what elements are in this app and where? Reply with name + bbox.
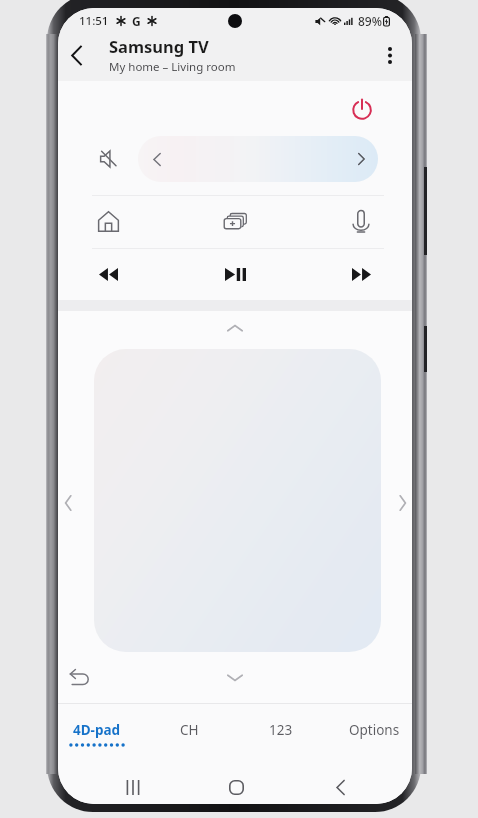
- staticText: G: [132, 13, 141, 29]
- button[interactable]: Back: [59, 37, 95, 73]
- button[interactable]: Touch pad: [94, 349, 381, 652]
- button[interactable]: Home: [90, 203, 126, 239]
- button[interactable]: Voice: [343, 203, 379, 239]
- staticText: CH: [180, 721, 199, 739]
- button[interactable]: Options: [328, 704, 412, 760]
- button[interactable]: Back: [322, 769, 358, 804]
- button[interactable]: Right: [385, 485, 412, 521]
- button[interactable]: 4D-pad: [58, 704, 143, 760]
- staticText: 4D-pad: [73, 721, 121, 739]
- button[interactable]: Left: [58, 485, 86, 521]
- staticText: 123: [269, 721, 293, 739]
- button[interactable]: Recents: [115, 769, 151, 804]
- button[interactable]: Down: [217, 660, 253, 696]
- button[interactable]: More options: [372, 37, 408, 73]
- button[interactable]: Volume: [138, 136, 378, 182]
- button[interactable]: Up: [217, 310, 253, 346]
- button[interactable]: Play pause: [217, 256, 253, 292]
- button[interactable]: Rewind: [90, 256, 126, 292]
- button[interactable]: Multi view: [217, 203, 253, 239]
- staticText: 89%: [358, 13, 382, 29]
- button[interactable]: Mute: [90, 141, 126, 177]
- staticText: Samsung TV: [109, 35, 209, 57]
- button[interactable]: 123: [235, 704, 327, 760]
- staticText: Options: [349, 721, 400, 739]
- staticText: My home – Living room: [109, 59, 236, 75]
- button[interactable]: Home: [218, 769, 254, 804]
- staticText: 11:51: [79, 13, 109, 29]
- button[interactable]: Back: [61, 659, 97, 695]
- button[interactable]: Fast forward: [343, 256, 379, 292]
- button[interactable]: CH: [143, 704, 235, 760]
- button[interactable]: Power: [344, 92, 380, 128]
